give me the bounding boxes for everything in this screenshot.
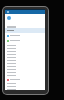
button[interactable] bbox=[5, 47, 45, 50]
button[interactable] bbox=[5, 56, 45, 59]
button[interactable] bbox=[5, 85, 45, 88]
button[interactable] bbox=[5, 28, 45, 33]
button[interactable] bbox=[5, 62, 45, 65]
button[interactable] bbox=[5, 53, 45, 56]
button[interactable] bbox=[5, 38, 45, 43]
button[interactable] bbox=[5, 82, 45, 85]
button[interactable] bbox=[5, 65, 45, 68]
button[interactable] bbox=[5, 44, 45, 47]
button[interactable] bbox=[5, 10, 45, 14]
button[interactable] bbox=[5, 59, 45, 62]
button[interactable] bbox=[5, 77, 45, 82]
button[interactable] bbox=[5, 88, 45, 90]
button[interactable] bbox=[5, 50, 45, 53]
button[interactable] bbox=[5, 33, 45, 38]
button[interactable] bbox=[5, 68, 45, 71]
button[interactable] bbox=[5, 71, 45, 74]
button[interactable] bbox=[5, 74, 45, 77]
